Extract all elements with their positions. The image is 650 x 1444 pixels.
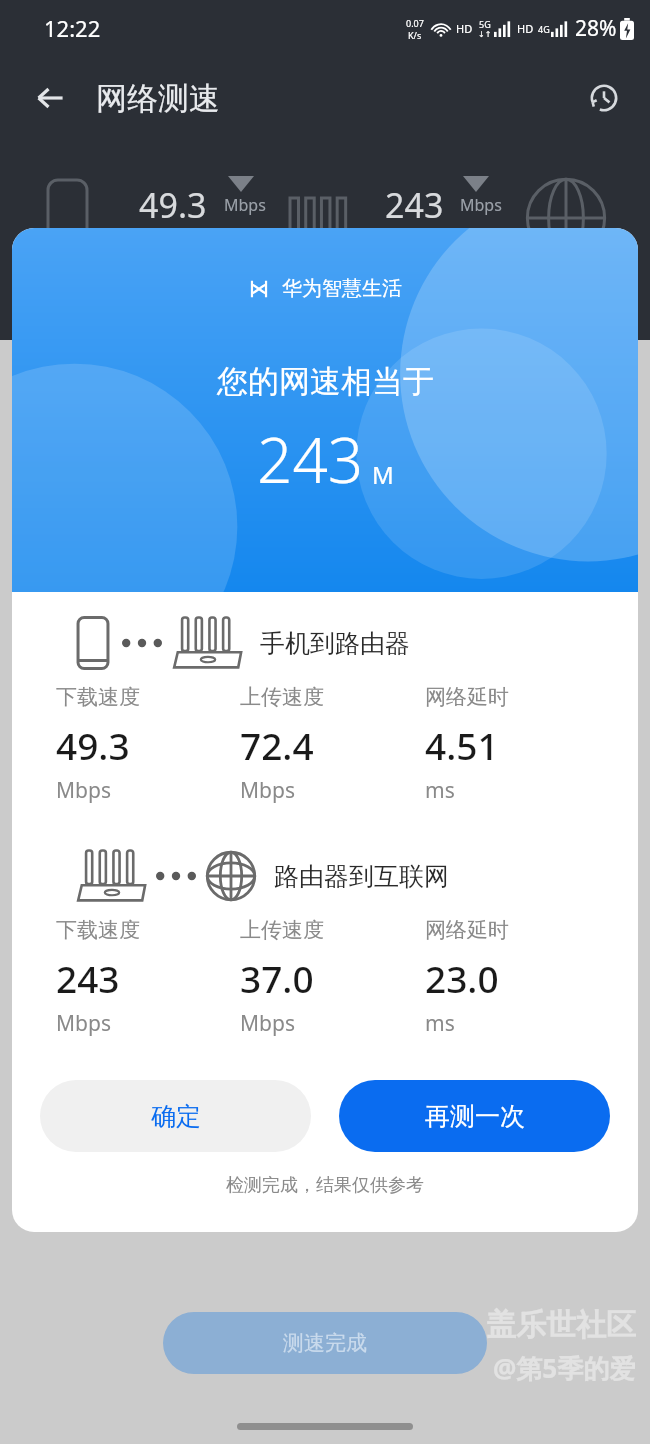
staticText: 检测完成，结果仅供参考 [12, 1174, 638, 1197]
staticText: 华为智慧生活 [282, 276, 402, 301]
staticText: 确定 [151, 1101, 201, 1132]
staticText: 上传速度 [240, 917, 324, 943]
staticText: 测速完成 [283, 1330, 367, 1356]
staticText: 网络延时 [425, 684, 509, 710]
staticText: 49.3 [56, 720, 130, 770]
staticText: @第5季的爱 [493, 1350, 636, 1386]
staticText: 网络延时 [425, 917, 509, 943]
staticText: M [372, 458, 394, 491]
staticText: 再测一次 [425, 1101, 525, 1132]
staticText: 下载速度 [56, 917, 140, 943]
staticText: 5G [479, 18, 491, 30]
staticText: Mbps [240, 1009, 295, 1038]
staticText: 4G [538, 23, 550, 35]
staticText: 4.51 [425, 720, 499, 770]
staticText: 盖乐世社区 [486, 1306, 636, 1344]
staticText: 243 [257, 417, 364, 501]
staticText: 12:22 [44, 13, 101, 43]
staticText: 49.3 [139, 182, 207, 228]
staticText: ↓↑ [478, 30, 492, 39]
staticText: 23.0 [425, 953, 499, 1003]
staticText: 下载速度 [56, 684, 140, 710]
staticText: Mbps [460, 194, 502, 216]
staticText: 手机到路由器 [260, 628, 410, 659]
staticText: 37.0 [240, 953, 314, 1003]
staticText: Mbps [240, 776, 295, 805]
staticText: 0.07 [406, 17, 424, 29]
staticText: 路由器到互联网 [274, 861, 449, 892]
staticText: 网络测速 [96, 79, 220, 118]
staticText: 243 [385, 182, 444, 228]
staticText: ms [425, 1009, 455, 1038]
staticText: Mbps [56, 776, 111, 805]
staticText: K/s [408, 29, 422, 41]
button[interactable]: History [580, 74, 628, 122]
staticText: 上传速度 [240, 684, 324, 710]
staticText: Mbps [224, 194, 266, 216]
button[interactable]: Back [26, 74, 74, 122]
staticText: 72.4 [240, 720, 314, 770]
staticText: ms [425, 776, 455, 805]
staticText: HD [517, 21, 534, 36]
button[interactable]: 测速完成 [163, 1312, 487, 1374]
staticText: Mbps [56, 1009, 111, 1038]
staticText: 243 [56, 953, 120, 1003]
staticText: 您的网速相当于 [217, 362, 434, 401]
staticText: HD [456, 21, 473, 36]
staticText: 28% [575, 14, 617, 43]
button[interactable]: 再测一次 [339, 1080, 610, 1152]
button[interactable]: 确定 [40, 1080, 311, 1152]
